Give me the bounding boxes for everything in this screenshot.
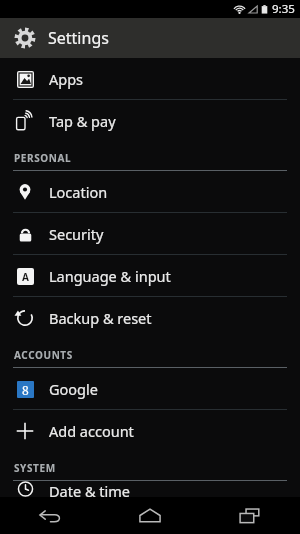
button[interactable]: Settings xyxy=(0,18,300,58)
other: Location xyxy=(16,183,34,201)
button[interactable]: Add account xyxy=(0,410,300,451)
button[interactable]: Home xyxy=(100,497,200,534)
other: Language and input xyxy=(22,270,29,284)
button[interactable]: Back xyxy=(0,497,100,534)
other: Security xyxy=(17,226,34,243)
button[interactable]: Apps xyxy=(0,58,300,99)
other: Backup and reset xyxy=(16,309,34,327)
staticText: Date & time xyxy=(49,481,130,497)
staticText: Settings xyxy=(48,27,109,49)
button[interactable]: Security xyxy=(0,213,300,254)
staticText: ACCOUNTS xyxy=(14,348,73,362)
staticText: 8 xyxy=(22,382,29,398)
other: Tap and pay xyxy=(15,111,35,131)
staticText: Security xyxy=(49,224,104,244)
button[interactable]: Tap and pay xyxy=(0,100,300,141)
other: Date and time xyxy=(17,481,34,497)
button[interactable]: Location xyxy=(0,171,300,212)
staticText: PERSONAL xyxy=(14,151,72,165)
button[interactable]: Google account xyxy=(0,368,300,409)
staticText: Add account xyxy=(49,421,134,441)
staticText: Location xyxy=(49,182,108,202)
other: Add account xyxy=(16,422,34,440)
button[interactable]: Recent apps xyxy=(200,497,300,534)
other: Apps xyxy=(17,71,34,88)
staticText: Language & input xyxy=(49,266,171,286)
staticText: Backup & reset xyxy=(49,308,152,328)
staticText: Tap & pay xyxy=(49,111,116,131)
button[interactable]: Date and time xyxy=(0,481,300,497)
staticText: A xyxy=(22,270,29,284)
button[interactable]: Language and input xyxy=(0,255,300,296)
button[interactable]: Backup and reset xyxy=(0,297,300,338)
staticText: Apps xyxy=(49,69,84,89)
staticText: SYSTEM xyxy=(14,461,56,475)
staticText: 9:35 xyxy=(272,1,295,17)
other: Google account xyxy=(22,382,29,398)
staticText: Google xyxy=(49,379,98,399)
